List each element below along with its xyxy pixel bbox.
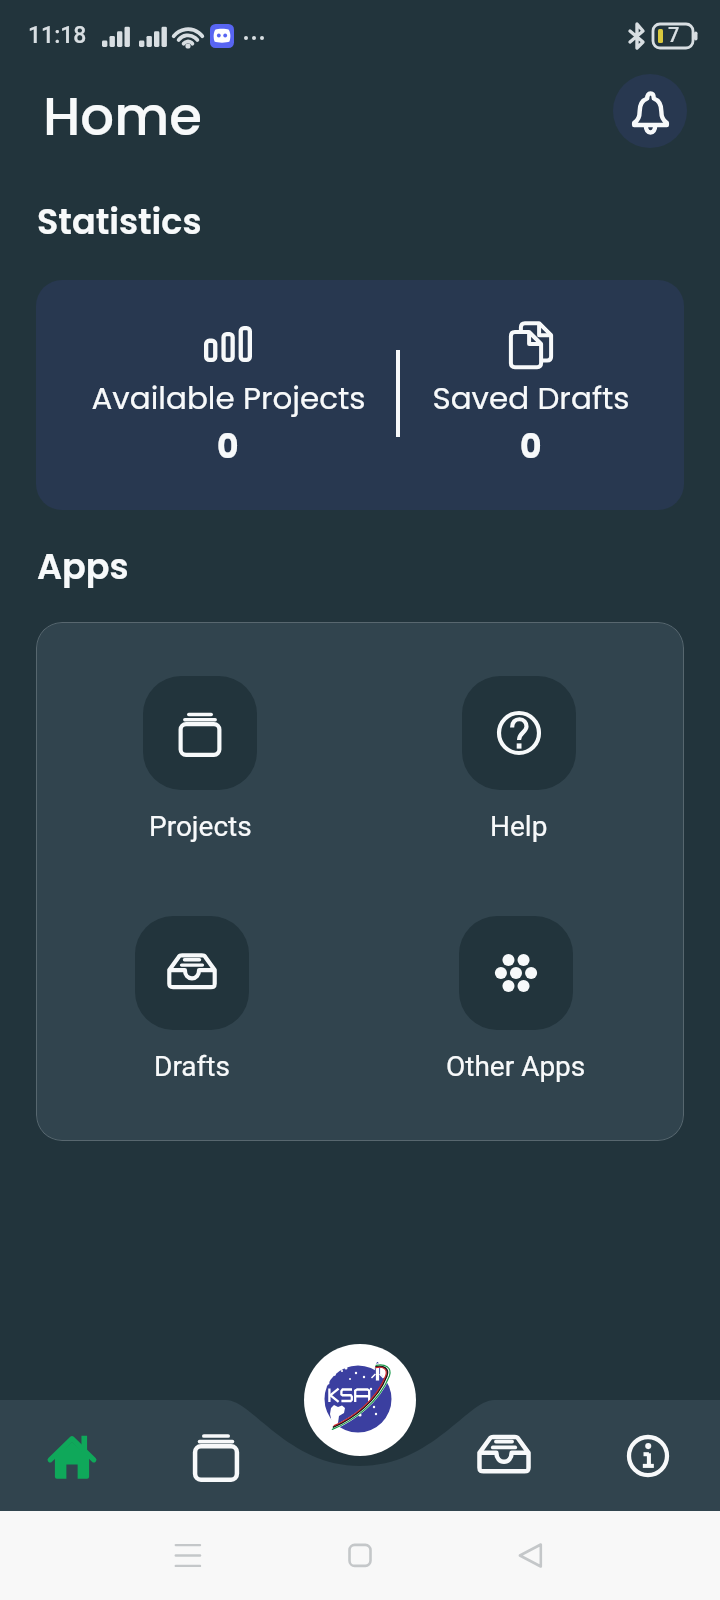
button[interactable]: Projects	[164, 1400, 268, 1511]
staticText: Available Projects	[91, 376, 366, 419]
staticText: Help	[490, 810, 548, 843]
staticText: Projects	[149, 810, 252, 843]
button[interactable]: KSA	[304, 1344, 416, 1456]
staticText: Other Apps	[446, 1050, 586, 1083]
staticText: Apps	[37, 542, 129, 591]
button[interactable]: Projects	[120, 676, 280, 843]
staticText: Saved Drafts	[432, 376, 630, 419]
staticText: 11:18	[28, 22, 87, 49]
button[interactable]: Drafts	[452, 1400, 556, 1511]
button[interactable]: Drafts	[112, 916, 272, 1083]
staticText: Statistics	[37, 197, 202, 246]
staticText: 7	[668, 23, 680, 46]
staticText: 0	[217, 423, 239, 469]
button[interactable]: Saved Drafts	[369, 326, 684, 469]
button[interactable]: Other Apps	[436, 916, 596, 1083]
button[interactable]: Available Projects	[66, 326, 390, 469]
button[interactable]: Home	[20, 1400, 124, 1511]
button[interactable]: Help	[439, 676, 599, 843]
staticText: Home	[43, 79, 202, 153]
staticText: 0	[520, 423, 542, 469]
button[interactable]: Info	[596, 1400, 700, 1511]
button[interactable]: Notifications	[613, 74, 687, 148]
staticText: Drafts	[154, 1050, 230, 1083]
